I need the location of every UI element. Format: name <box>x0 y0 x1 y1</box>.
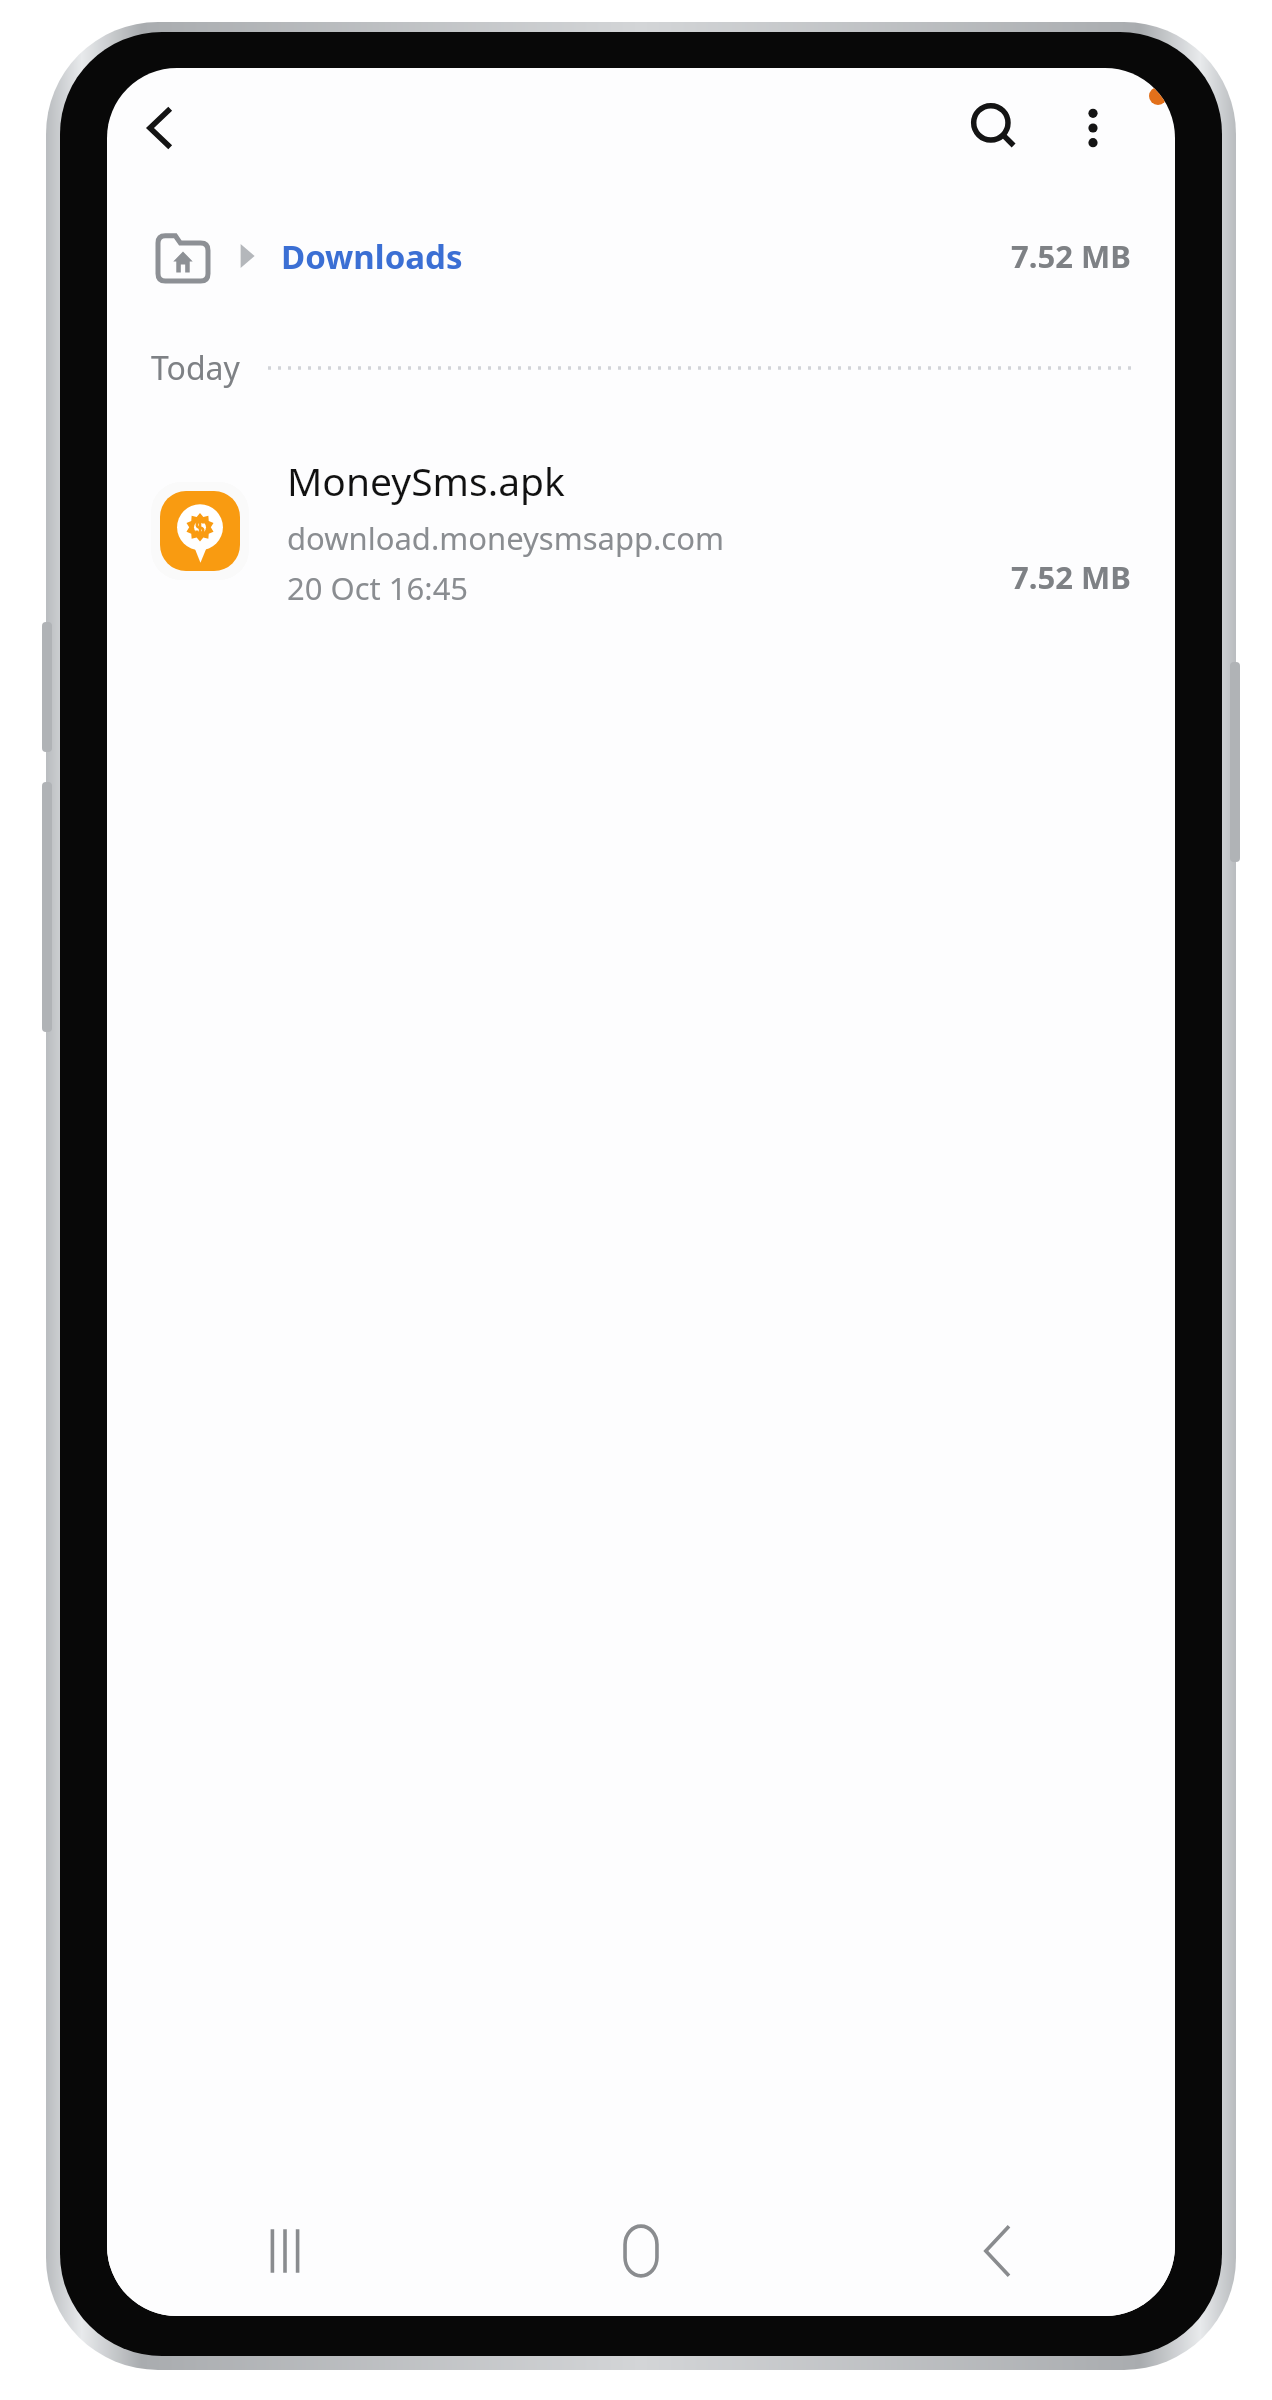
staticText: Today <box>151 346 240 390</box>
button[interactable]: Recent apps <box>107 2186 463 2316</box>
staticText: 7.52 MB <box>1011 556 1131 598</box>
button[interactable]: Downloads <box>107 216 1175 296</box>
staticText: download.moneysmsapp.com <box>287 517 724 559</box>
button[interactable]: Back <box>819 2186 1175 2316</box>
button[interactable]: Search <box>947 80 1043 176</box>
staticText: 20 Oct 16:45 <box>287 567 469 609</box>
staticText: Downloads <box>281 234 463 279</box>
staticText: 7.52 MB <box>1011 235 1131 277</box>
button[interactable]: More options <box>1045 80 1141 176</box>
button[interactable]: Home <box>463 2186 819 2316</box>
staticText: MoneySms.apk <box>287 454 565 507</box>
button[interactable]: Back <box>113 80 209 176</box>
button[interactable]: MoneySms.apk <box>107 436 1175 626</box>
